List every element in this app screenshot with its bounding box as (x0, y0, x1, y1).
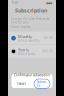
staticText: Monthly (18, 34, 32, 39)
button[interactable]: Cancel (14, 81, 29, 87)
staticText: ●●● (46, 1, 52, 4)
staticText: Choose the plan that works best for you. (11, 17, 49, 24)
staticText: Cancel (17, 82, 26, 85)
staticText: Billed monthly (18, 39, 39, 42)
staticText: $9.99 (44, 36, 53, 40)
staticText: Subscribe (37, 80, 47, 87)
staticText: Confirm your subscription (14, 73, 50, 77)
staticText: 9:41 (12, 1, 19, 5)
staticText: Subscription (15, 7, 47, 14)
staticText: $89.99 (42, 50, 53, 53)
staticText: Yearly (18, 47, 29, 52)
staticText: Billed yearly (18, 52, 35, 56)
button[interactable]: Subscribe (34, 79, 50, 88)
staticText: Cancel anytime. (11, 25, 32, 29)
